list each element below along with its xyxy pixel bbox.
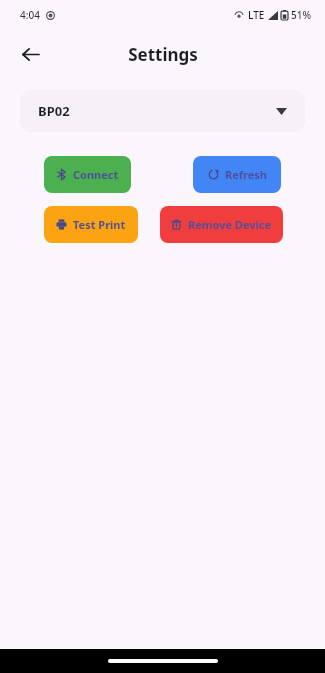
staticText: BP02 (38, 102, 70, 120)
staticText: Test Print (73, 217, 126, 232)
button[interactable]: BP02 (20, 90, 305, 132)
staticText: Refresh (225, 167, 267, 182)
staticText: 4:04 (20, 8, 40, 22)
button[interactable]: Back (12, 36, 48, 72)
button[interactable]: Connect (44, 156, 131, 193)
staticText: Remove Device (188, 217, 272, 232)
button[interactable]: Refresh (193, 156, 281, 193)
button[interactable]: Test Print (44, 206, 138, 243)
staticText: Settings (128, 43, 198, 66)
staticText: Connect (73, 167, 119, 182)
button[interactable]: Remove Device (160, 206, 283, 243)
staticText: 51% (291, 8, 311, 22)
staticText: LTE (248, 8, 265, 22)
